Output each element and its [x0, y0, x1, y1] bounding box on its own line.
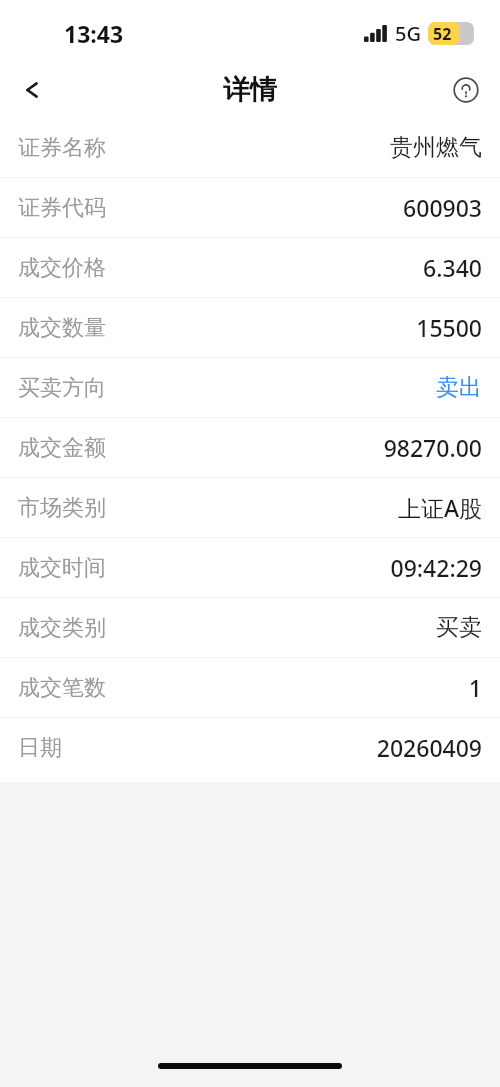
staticText: 52 [433, 23, 452, 45]
staticText: 成交金额 [18, 434, 106, 462]
button[interactable]: 证券名称 [0, 118, 500, 177]
staticText: 6.340 [423, 252, 482, 283]
staticText: 证券名称 [18, 134, 106, 162]
button[interactable]: 成交数量 [0, 298, 500, 357]
staticText: 买卖方向 [18, 374, 106, 402]
staticText: 成交数量 [18, 314, 106, 342]
staticText: 成交时间 [18, 554, 106, 582]
staticText: 20260409 [376, 732, 482, 763]
staticText: 5G [395, 20, 421, 47]
button[interactable]: 成交金额 [0, 418, 500, 477]
staticText: 上证A股 [397, 492, 482, 523]
button[interactable]: 证券代码 [0, 178, 500, 237]
button[interactable]: 市场类别 [0, 478, 500, 537]
staticText: 13:43 [64, 18, 124, 49]
staticText: 成交价格 [18, 254, 106, 282]
button[interactable]: 成交时间 [0, 538, 500, 597]
staticText: 15500 [416, 312, 482, 343]
button[interactable]: 成交类别 [0, 598, 500, 657]
staticText: 市场类别 [18, 494, 106, 522]
staticText: 成交笔数 [18, 674, 106, 702]
staticText: 成交类别 [18, 614, 106, 642]
staticText: 买卖 [436, 613, 482, 642]
staticText: 详情 [223, 73, 277, 107]
staticText: 证券代码 [18, 194, 106, 222]
button[interactable]: 成交笔数 [0, 658, 500, 717]
button[interactable]: 买卖方向 [0, 358, 500, 417]
staticText: 卖出 [436, 373, 482, 402]
staticText: 98270.00 [383, 432, 482, 463]
button[interactable]: 成交价格 [0, 238, 500, 297]
staticText: 日期 [18, 734, 62, 762]
button[interactable]: Help [442, 66, 490, 114]
staticText: 600903 [403, 192, 482, 223]
staticText: 1 [468, 672, 482, 703]
button[interactable]: 日期 [0, 718, 500, 777]
staticText: 贵州燃气 [390, 133, 482, 162]
staticText: 09:42:29 [390, 552, 482, 583]
button[interactable]: Back [8, 64, 60, 116]
